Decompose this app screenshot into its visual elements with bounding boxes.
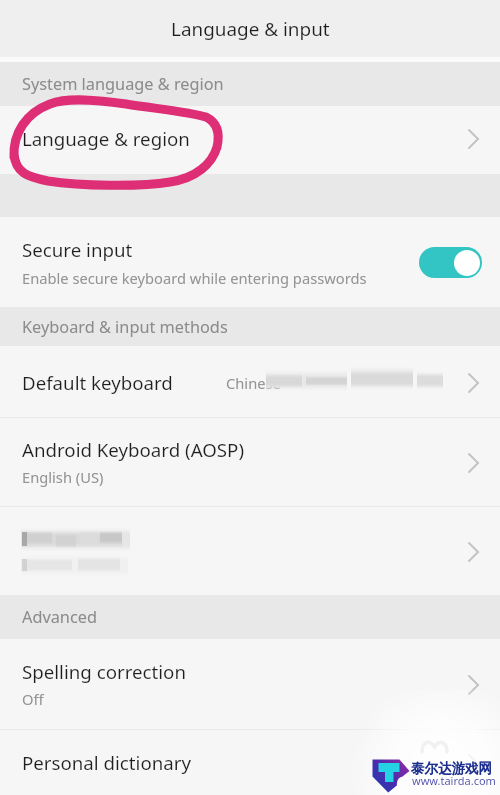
other: Open [468, 541, 479, 563]
staticText: English (US) [22, 467, 104, 487]
button[interactable]: Secure input [0, 217, 500, 307]
other: Open [468, 674, 479, 696]
staticText: Language & region [22, 126, 190, 151]
staticText: Enable secure keyboard while entering pa… [22, 268, 367, 288]
staticText: Default keyboard [22, 370, 173, 395]
button[interactable]: Personal dictionary [0, 730, 500, 795]
staticText: Android Keyboard (AOSP) [22, 437, 244, 462]
button[interactable]: Secure input toggle [419, 247, 482, 278]
staticText: Advanced [22, 606, 97, 628]
staticText: Personal dictionary [22, 750, 191, 775]
other: Open [468, 372, 479, 394]
button[interactable]: Open [0, 507, 500, 595]
staticText: Spelling correction [22, 659, 186, 684]
button[interactable]: Default keyboard [0, 346, 500, 417]
staticText: 泰尔达游戏网 [411, 760, 492, 777]
staticText: Off [22, 689, 44, 709]
other: Open [468, 753, 479, 775]
button[interactable]: Spelling correction [0, 639, 500, 729]
staticText: www.tairda.com [412, 773, 496, 788]
staticText: Chinese [226, 373, 281, 393]
button[interactable]: Language & region [0, 106, 500, 170]
staticText: Language & input [171, 16, 330, 42]
staticText: Keyboard & input methods [22, 316, 228, 338]
other: Open [468, 452, 479, 474]
other: Open [468, 128, 479, 150]
staticText: System language & region [22, 73, 224, 95]
button[interactable]: Android Keyboard (AOSP) [0, 418, 500, 506]
staticText: Secure input [22, 237, 133, 262]
